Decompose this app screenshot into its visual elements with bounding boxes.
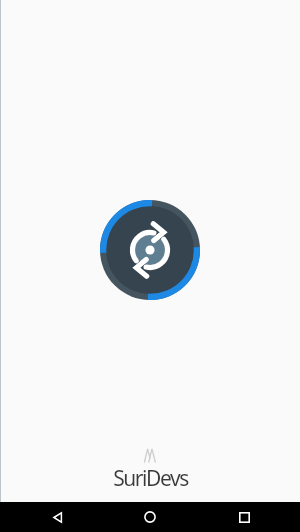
button[interactable]: Back xyxy=(37,502,77,532)
button[interactable]: Home xyxy=(130,502,170,532)
button[interactable]: Recent apps xyxy=(224,502,264,532)
staticText: SuriDevs xyxy=(113,464,188,493)
